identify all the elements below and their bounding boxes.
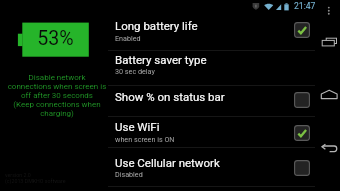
staticText: 53% [22,27,89,50]
button[interactable]: Back [320,141,340,156]
button[interactable]: Unchecked [294,92,310,108]
staticText: when screen is ON [115,135,175,143]
button[interactable]: Home [319,88,340,102]
staticText: Disabled [115,170,143,178]
button[interactable]: Long battery life [108,16,315,51]
button[interactable]: Battery saver type [108,51,315,86]
staticText: Enabled [115,34,141,42]
button[interactable]: Checked [294,125,310,141]
button[interactable]: Recents [320,36,340,50]
button[interactable]: Use Cellular network [108,148,315,187]
staticText: 21:47 [294,1,316,11]
staticText: Use WiFi [115,120,160,133]
button[interactable]: Checked [294,22,310,38]
button[interactable]: Show % on status bar [108,86,315,117]
button[interactable]: Use WiFi [108,117,315,148]
staticText: Use Cellular network [115,156,220,169]
staticText: 30 sec delay [115,67,155,75]
button[interactable]: Unchecked [294,160,310,176]
staticText: Battery saver type [115,53,207,66]
staticText: version 2.0 (c)2013 DMKHO software [5,172,66,184]
staticText: Long battery life [115,19,198,32]
staticText: Disable network connections when screen … [3,73,111,118]
staticText: Show % on status bar [115,90,225,103]
